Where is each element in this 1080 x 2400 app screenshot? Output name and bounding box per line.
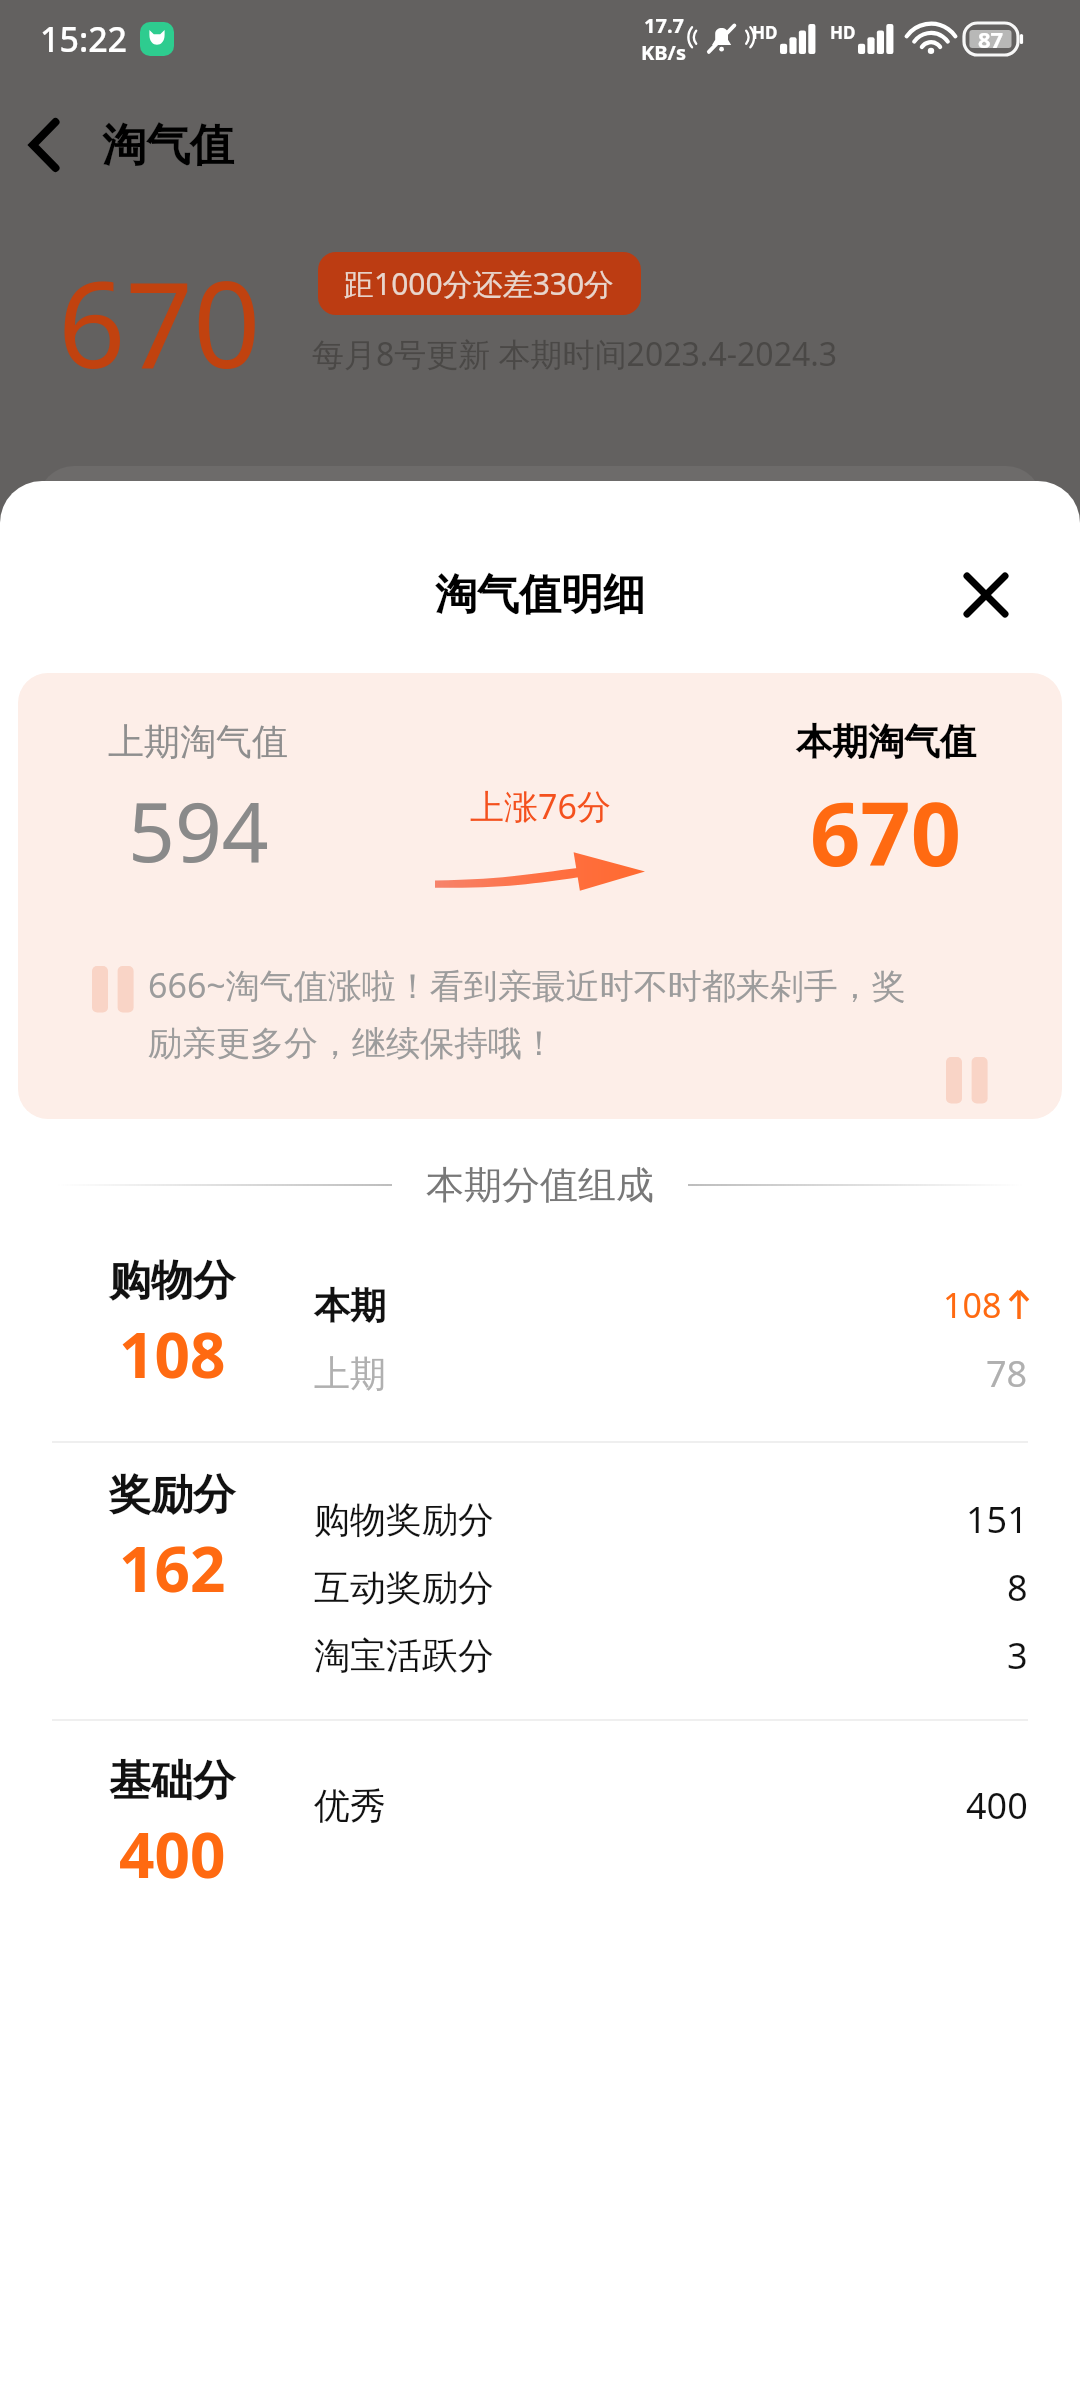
staticText: 购物分: [109, 1255, 235, 1308]
staticText: 108: [119, 1312, 226, 1396]
staticText: 淘气值: [102, 118, 234, 173]
staticText: 购物奖励分: [314, 1497, 494, 1542]
staticText: 17.7: [644, 12, 684, 39]
staticText: HD: [752, 21, 778, 44]
staticText: 400: [119, 1812, 226, 1896]
staticText: 670: [810, 772, 962, 892]
staticText: 8: [1007, 1563, 1028, 1612]
staticText: 666~淘气值涨啦！看到亲最近时不时都来剁手，奖 励亲更多分，继续保持哦！: [148, 962, 906, 1065]
staticText: 距1000分还差330分: [344, 263, 615, 304]
staticText: 87: [978, 24, 1004, 54]
staticText: 本期: [314, 1283, 386, 1328]
staticText: 上期: [314, 1351, 386, 1396]
staticText: 优秀: [314, 1783, 386, 1828]
staticText: 400: [966, 1781, 1028, 1830]
staticText: 上期淘气值: [108, 719, 288, 764]
staticText: 108: [943, 1282, 1002, 1328]
staticText: 3: [1007, 1631, 1028, 1680]
staticText: 670: [58, 242, 261, 382]
staticText: 162: [119, 1526, 226, 1610]
staticText: 上涨76分: [470, 783, 611, 829]
staticText: KB/s: [641, 39, 686, 66]
staticText: 基础分: [109, 1755, 235, 1808]
button[interactable]: 基础分: [0, 1721, 1080, 1926]
staticText: 本期淘气值: [796, 719, 976, 764]
staticText: 594: [128, 774, 269, 886]
button[interactable]: Close: [958, 567, 1014, 623]
staticText: 奖励分: [109, 1469, 235, 1522]
button[interactable]: 购物分: [0, 1233, 1080, 1441]
staticText: HD: [830, 21, 856, 44]
staticText: 本期分值组成: [426, 1161, 654, 1209]
staticText: 15:22: [40, 16, 128, 62]
staticText: 每月8号更新 本期时间2023.4-2024.3: [312, 332, 838, 376]
staticText: 互动奖励分: [314, 1565, 494, 1610]
staticText: 151: [966, 1495, 1028, 1544]
staticText: 78: [986, 1349, 1028, 1398]
staticText: 淘气值明细: [435, 569, 645, 622]
staticText: 淘宝活跃分: [314, 1633, 494, 1678]
button[interactable]: 奖励分: [0, 1443, 1080, 1719]
button[interactable]: Back: [0, 100, 90, 190]
